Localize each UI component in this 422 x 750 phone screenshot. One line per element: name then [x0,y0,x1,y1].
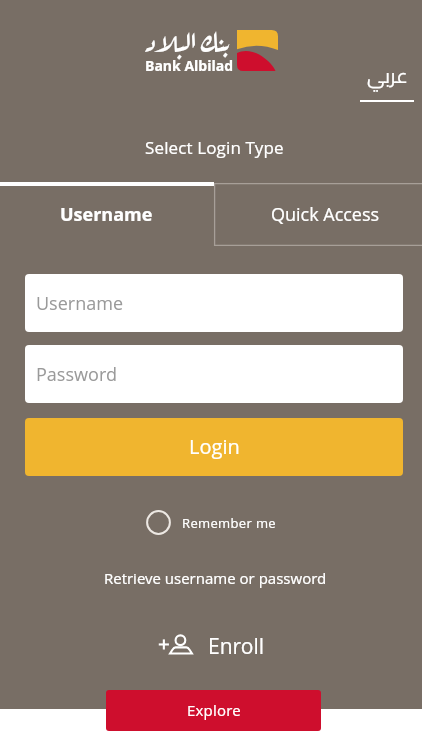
button[interactable]: Remember me [146,510,276,535]
staticText: Select Login Type [145,136,284,158]
button[interactable]: Username [0,182,214,246]
other: Enroll [157,625,199,667]
staticText: Bank Albilad [145,56,234,75]
staticText: Password [36,362,117,387]
staticText: عربي [367,57,408,94]
button[interactable]: Quick Access [214,183,422,246]
button[interactable]: Enroll [157,625,265,667]
staticText: Username [36,291,124,316]
button[interactable]: Login [25,418,403,476]
button[interactable]: عربي [360,58,414,102]
button[interactable]: Explore [106,690,321,731]
button[interactable]: Username [25,274,403,332]
staticText: Login [189,433,240,460]
staticText: Explore [187,700,241,720]
button[interactable]: Retrieve username or password [104,568,327,588]
staticText: Remember me [182,514,276,532]
staticText: بنك البلاد [145,18,230,59]
button[interactable]: Password [25,345,403,403]
staticText: Quick Access [271,202,380,227]
staticText: Enroll [208,632,265,661]
staticText: Username [60,202,153,227]
